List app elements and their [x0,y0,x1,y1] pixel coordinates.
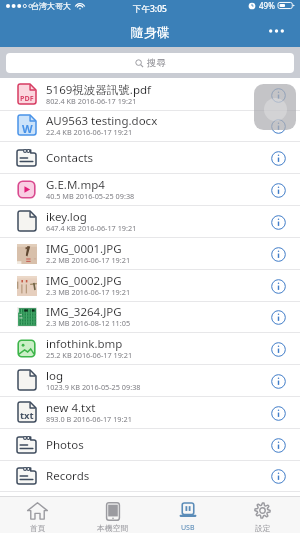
staticText: 893.0 B 2016-06-17 19:21 [46,414,132,424]
staticText: 首頁 [30,523,46,533]
staticText: 搜尋 [147,57,166,69]
button[interactable]: ikey.log [0,206,300,238]
staticText: 2.2 MB 2016-06-17 19:21 [46,255,131,265]
button[interactable]: More info [265,368,291,394]
staticText: Contacts [46,150,94,166]
staticText: 25.2 KB 2016-06-17 19:21 [46,350,133,360]
button[interactable]: PDF [0,79,300,111]
staticText: G.E.M.mp4 [46,177,105,193]
staticText: 802.4 KB 2016-06-17 19:21 [46,96,137,106]
button[interactable]: G.E.M.mp4 [0,174,300,206]
staticText: IMG_0002.JPG [46,273,122,289]
staticText: IMG_0001.JPG [46,241,122,257]
button[interactable]: IMG_0002.JPG [0,270,300,302]
button[interactable]: txt [0,397,300,429]
button[interactable]: Records [0,460,300,492]
staticText: ikey.log [46,209,87,225]
button[interactable]: 首頁 [0,497,75,533]
button[interactable]: More info [265,336,291,362]
staticText: 5169視波器訊號.pdf [46,82,151,98]
staticText: Photos [46,437,84,453]
button[interactable]: USB [150,497,225,533]
staticText: 647.4 KB 2016-06-17 19:21 [46,223,137,233]
button[interactable]: More info [265,82,291,108]
button[interactable]: More info [265,304,291,330]
staticText: W [22,121,33,136]
button[interactable]: Photos [0,429,300,461]
staticText: txt [20,409,34,422]
button[interactable]: More info [265,432,291,458]
button[interactable]: log [0,365,300,397]
staticText: 40.5 MB 2016-05-25 09:38 [46,191,135,201]
button[interactable]: 本機空間 [75,497,150,533]
staticText: 隨身碟 [131,24,170,40]
staticText: 2.3 MB 2016-06-17 19:21 [46,287,131,297]
button[interactable]: IMG_0001.JPG [0,238,300,270]
button[interactable]: More info [265,113,291,139]
staticText: log [46,368,63,384]
button[interactable]: More info [265,463,291,489]
button[interactable]: Contacts [0,142,300,174]
staticText: Records [46,468,90,484]
staticText: new 4.txt [46,400,96,416]
button[interactable]: 搜尋 [6,53,294,73]
button[interactable]: IMG_3264.JPG [0,301,300,333]
button[interactable]: More info [265,209,291,235]
button[interactable]: 設定 [225,497,300,533]
button[interactable]: More info [265,273,291,299]
button[interactable]: W [0,110,300,142]
button[interactable]: More info [265,145,291,171]
staticText: PDF [20,93,34,103]
staticText: 本機空間 [97,523,129,533]
staticText: 1023.9 KB 2016-05-25 09:38 [46,382,141,392]
staticText: 2.3 MB 2016-08-12 11:05 [46,318,131,328]
button[interactable]: More options [261,20,291,42]
staticText: 22.4 KB 2016-06-17 19:21 [46,127,133,137]
button[interactable]: More info [265,400,291,426]
button[interactable]: infothink.bmp [0,333,300,365]
staticText: 台湾大哥大 [31,1,71,11]
button[interactable]: More info [265,177,291,203]
staticText: 下午3:05 [133,3,167,15]
button[interactable]: More info [265,241,291,267]
staticText: 49% [259,0,275,11]
staticText: AU9563 testing.docx [46,113,158,129]
staticText: 設定 [255,523,271,533]
staticText: USB [181,523,195,533]
staticText: IMG_3264.JPG [46,304,122,320]
staticText: infothink.bmp [46,336,123,352]
